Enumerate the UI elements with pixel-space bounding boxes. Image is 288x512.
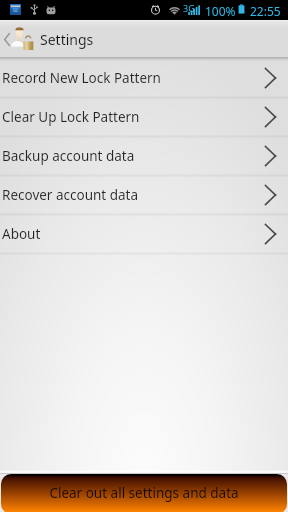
staticText: About <box>2 225 41 243</box>
button[interactable]: About <box>0 215 288 253</box>
staticText: 22:55 <box>250 3 281 19</box>
staticText: Clear out all settings and data <box>49 484 239 502</box>
button[interactable]: Record New Lock Pattern <box>0 59 288 97</box>
button[interactable]: Recover account data <box>0 176 288 214</box>
staticText: Clear Up Lock Pattern <box>2 108 140 126</box>
staticText: Backup account data <box>2 147 135 165</box>
staticText: Settings <box>40 30 94 49</box>
staticText: Recover account data <box>2 186 139 204</box>
button[interactable]: Clear out all settings and data <box>1 474 287 512</box>
button[interactable]: Backup account data <box>0 137 288 175</box>
button[interactable]: Navigate up <box>0 20 38 59</box>
staticText: Record New Lock Pattern <box>2 69 161 87</box>
staticText: 3G <box>183 2 195 14</box>
staticText: 100% <box>205 3 236 19</box>
button[interactable]: Clear Up Lock Pattern <box>0 98 288 136</box>
